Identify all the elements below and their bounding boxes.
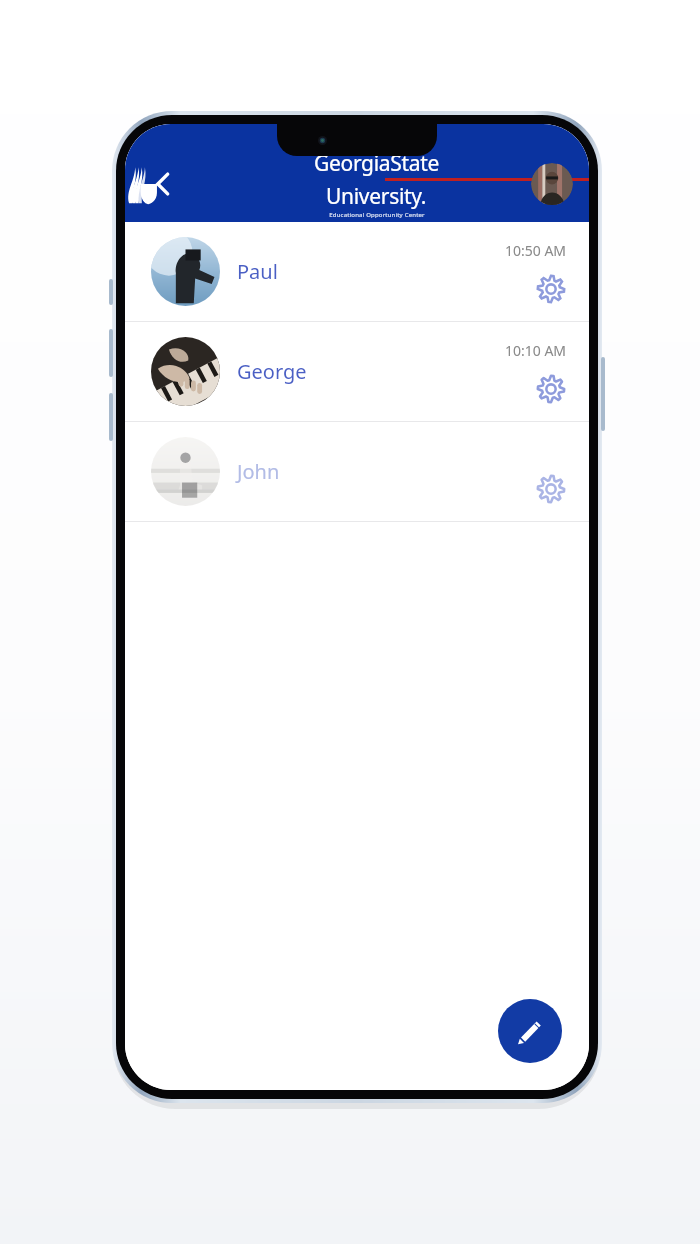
button[interactable]: Settings for John	[529, 467, 573, 511]
staticText: Educational Opportunity Center	[329, 211, 425, 219]
button[interactable]: Settings for Paul	[529, 267, 573, 311]
staticText: George	[237, 358, 307, 385]
button[interactable]: John	[125, 422, 589, 521]
button[interactable]: Paul	[125, 222, 589, 321]
button[interactable]: Back	[139, 160, 187, 208]
button[interactable]: George	[125, 322, 589, 421]
staticText: 10:50 AM	[505, 241, 567, 260]
button[interactable]: Compose new message	[498, 999, 562, 1063]
staticText: Paul	[237, 258, 278, 285]
staticText: John	[237, 458, 280, 485]
staticText: GeorgiaState	[314, 149, 440, 178]
staticText: University.	[326, 182, 427, 211]
button[interactable]: Profile	[531, 163, 573, 205]
button[interactable]: Settings for George	[529, 367, 573, 411]
staticText: 10:10 AM	[505, 341, 567, 360]
